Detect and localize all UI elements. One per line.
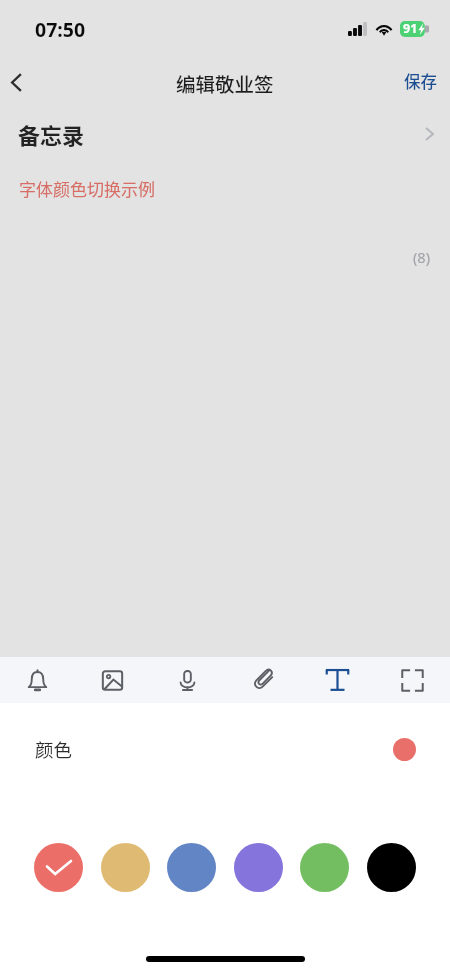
button[interactable]: 备忘录 [0,108,450,160]
button[interactable]: Color 4 [234,843,283,892]
other: Current colour [393,738,416,761]
button[interactable]: Color 3 [167,843,216,892]
staticText: 字体颜色切换示例 [19,176,155,201]
staticText: 颜色 [35,736,73,763]
staticText: 编辑敬业签 [176,69,274,97]
button[interactable]: Reminder [0,657,75,703]
button[interactable]: Fullscreen [375,657,450,703]
staticText: 91 [403,20,418,37]
button[interactable]: 保存 [389,59,450,103]
button[interactable]: Voice [150,657,225,703]
button[interactable]: Color 6 [367,843,416,892]
staticText: (8) [413,247,430,267]
button[interactable]: Back [0,57,32,107]
button[interactable]: Text format [300,657,375,703]
button[interactable]: Color 2 [101,843,150,892]
staticText: 备忘录 [18,118,85,150]
button[interactable]: Image [75,657,150,703]
button[interactable]: Color 1 [34,843,83,892]
staticText: 07:50 [35,16,86,43]
button[interactable]: 颜色 [0,703,450,795]
button[interactable]: Color 5 [300,843,349,892]
staticText: 保存 [404,69,437,93]
button[interactable]: Attachment [225,657,300,703]
